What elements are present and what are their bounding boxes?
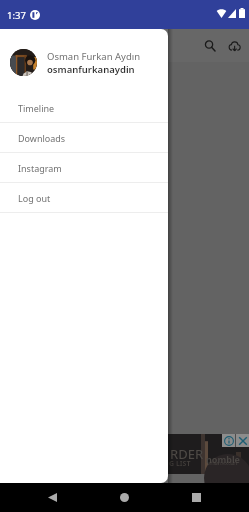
button[interactable]: Ad info	[222, 434, 235, 447]
button[interactable]: Timeline	[0, 93, 168, 122]
staticText: Log out	[18, 192, 51, 204]
staticText: RDER	[170, 445, 204, 463]
staticText: 1:37	[7, 9, 26, 22]
button[interactable]: Downloads	[0, 123, 168, 152]
button[interactable]: Home	[111, 484, 137, 510]
staticText: Instagram	[18, 162, 62, 174]
button[interactable]: Download	[222, 34, 246, 58]
staticText: osmanfurkanaydin	[47, 63, 135, 76]
button[interactable]: Back	[39, 484, 65, 510]
button[interactable]: Instagram	[0, 153, 168, 182]
button[interactable]: Search	[198, 34, 222, 58]
staticText: Osman Furkan Aydın	[47, 50, 141, 63]
staticText: G LIST	[169, 459, 191, 469]
button[interactable]: Log out	[0, 183, 168, 212]
button[interactable]: Profile photo	[10, 32, 168, 93]
staticText: Downloads	[18, 132, 66, 144]
staticText: ARTISAN CHOCOLATE	[207, 462, 238, 466]
button[interactable]: Profile photo	[10, 49, 37, 76]
button[interactable]: Advertisement	[0, 434, 249, 474]
staticText: nomble	[206, 453, 240, 465]
staticText: Timeline	[18, 102, 55, 114]
button[interactable]: Recent apps	[183, 484, 209, 510]
button[interactable]: Close ad	[236, 434, 249, 447]
